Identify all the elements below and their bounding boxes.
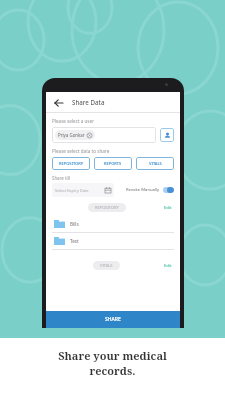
staticText: Priya Gonkar	[58, 132, 85, 138]
staticText: Edit	[164, 263, 172, 269]
staticText: REPORTS	[104, 161, 122, 166]
staticText: VITALS	[100, 263, 113, 268]
staticText: Test	[70, 238, 79, 244]
staticText: VITALS	[149, 161, 162, 166]
staticText: Select Expiry Date	[55, 188, 89, 193]
staticText: records.	[89, 363, 136, 378]
button[interactable]: SHARE	[46, 311, 180, 328]
staticText: Edit	[164, 205, 172, 211]
button[interactable]: VITALS	[136, 157, 174, 170]
button[interactable]: Add user	[160, 128, 174, 142]
button[interactable]: Revoke manually toggle	[163, 187, 174, 193]
staticText: Share Data	[72, 98, 105, 106]
staticText: Share till	[52, 175, 70, 181]
button[interactable]: REPOSITORY	[52, 157, 90, 170]
staticText: Share your medical	[58, 348, 167, 363]
staticText: REPOSITORY	[59, 161, 84, 166]
button[interactable]: REPORTS	[94, 157, 132, 170]
staticText: Please select a user	[52, 118, 95, 124]
staticText: Please select data to share	[52, 148, 110, 154]
staticText: REPOSITORY	[95, 205, 119, 210]
button[interactable]: Edit	[162, 205, 174, 211]
button[interactable]: Back	[52, 96, 65, 109]
button[interactable]: Select Expiry Date	[52, 183, 114, 197]
staticText: Revoke Manually	[126, 187, 160, 193]
button[interactable]: Bills	[52, 216, 174, 232]
button[interactable]: Edit	[162, 263, 174, 269]
staticText: Bills	[70, 221, 79, 227]
staticText: SHARE	[105, 316, 121, 323]
button[interactable]: Test	[52, 233, 174, 249]
button[interactable]: Priya Gonkar	[52, 127, 156, 143]
